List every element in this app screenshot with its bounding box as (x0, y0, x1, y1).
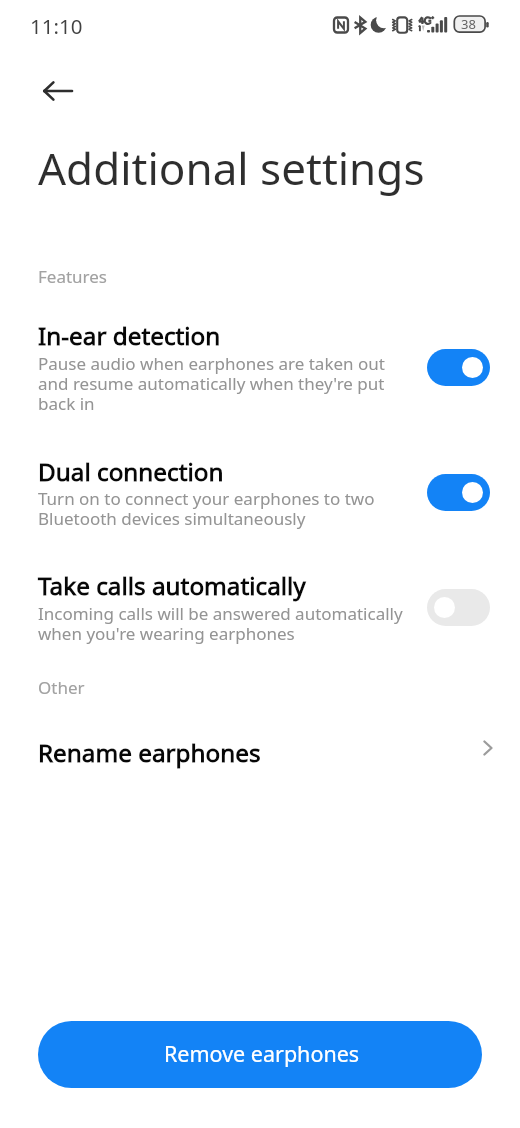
staticText: Turn on to connect your earphones to two (38, 487, 375, 510)
button[interactable]: In-ear detection (0, 318, 520, 412)
staticText: back in (38, 392, 95, 415)
staticText: Dual connection (38, 455, 224, 488)
staticText: 11:10 (30, 12, 83, 40)
staticText: Take calls automatically (38, 569, 306, 602)
staticText: Other (38, 676, 85, 699)
button[interactable]: Remove earphones (38, 1021, 482, 1088)
staticText: Bluetooth devices simultaneously (38, 507, 306, 530)
button[interactable]: Dual connection (0, 453, 520, 527)
staticText: Incoming calls will be answered automati… (38, 602, 403, 625)
staticText: and resume automatically when they're pu… (38, 372, 385, 395)
staticText: when you're wearing earphones (38, 622, 295, 645)
staticText: Features (38, 265, 108, 288)
button[interactable]: Switch on (427, 349, 490, 386)
button[interactable]: Rename earphones (0, 724, 520, 780)
staticText: 38 (461, 15, 476, 33)
button[interactable]: Switch off (427, 589, 490, 626)
button[interactable]: Switch on (427, 474, 490, 511)
staticText: Additional settings (38, 138, 425, 198)
button[interactable]: Take calls automatically (0, 568, 520, 642)
staticText: In-ear detection (38, 319, 221, 352)
button[interactable]: Back (33, 66, 82, 115)
staticText: Remove earphones (164, 1039, 360, 1068)
staticText: Rename earphones (38, 736, 261, 769)
staticText: Pause audio when earphones are taken out (38, 352, 385, 375)
